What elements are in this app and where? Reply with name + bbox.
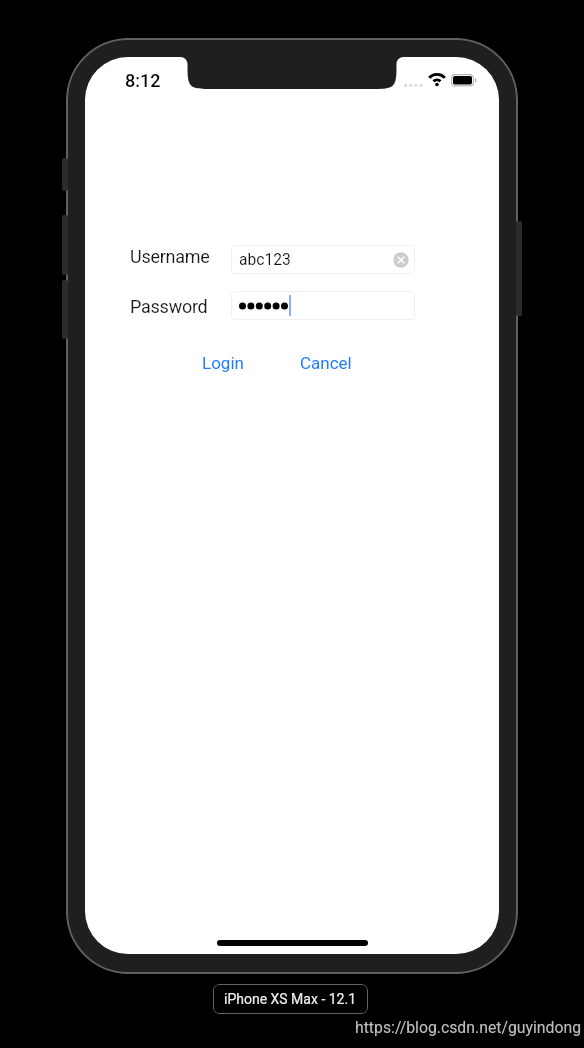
- staticText: iPhone XS Max - 12.1: [224, 991, 357, 1007]
- staticText: Cancel: [300, 353, 352, 373]
- button[interactable]: Cancel: [295, 349, 357, 377]
- button[interactable]: abc123: [231, 245, 415, 274]
- staticText: 8:12: [125, 70, 161, 91]
- button[interactable]: Clear text: [393, 252, 409, 268]
- staticText: Username: [130, 246, 210, 267]
- button[interactable]: iPhone XS Max - 12.1: [213, 984, 368, 1014]
- staticText: abc123: [239, 251, 291, 269]
- staticText: Login: [202, 353, 244, 373]
- staticText: Password: [130, 296, 208, 317]
- button[interactable]: [231, 291, 415, 320]
- button[interactable]: Login: [197, 349, 249, 377]
- staticText: https://blog.csdn.net/guyindong: [355, 1018, 582, 1037]
